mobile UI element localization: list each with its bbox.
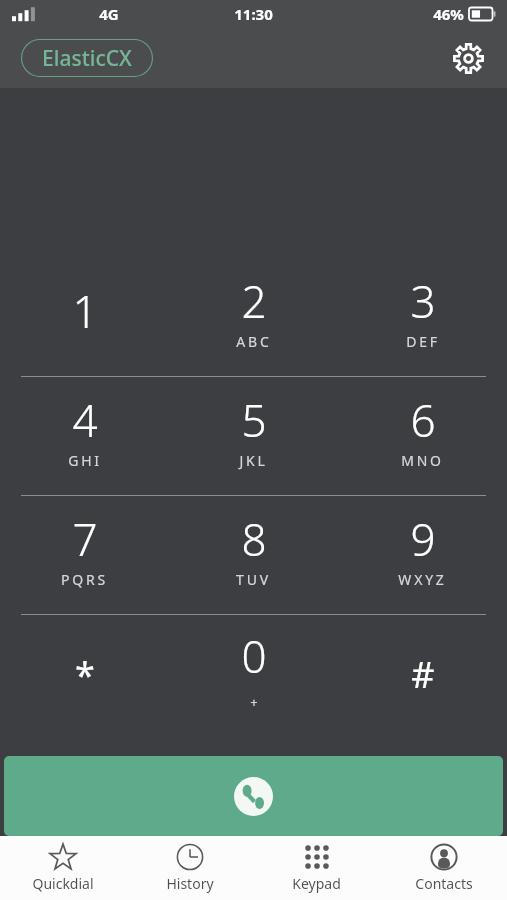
button[interactable]: Call	[4, 756, 503, 836]
staticText: #	[411, 650, 435, 699]
staticText: MNO	[401, 451, 444, 470]
button[interactable]: 9	[338, 496, 507, 614]
staticText: 6	[410, 390, 436, 450]
staticText: 11:30	[234, 4, 273, 24]
button[interactable]: *	[0, 615, 169, 733]
staticText: 4	[72, 390, 98, 450]
staticText: 8	[241, 509, 267, 569]
button[interactable]: 6	[338, 377, 507, 495]
button[interactable]: Settings	[448, 38, 488, 78]
staticText: Keypad	[292, 874, 341, 893]
staticText: GHI	[68, 451, 102, 470]
button[interactable]: Contacts	[380, 836, 507, 900]
button[interactable]: 7	[0, 496, 169, 614]
staticText: JKL	[239, 451, 268, 470]
staticText: +	[250, 693, 258, 711]
button[interactable]: 5	[169, 377, 338, 495]
staticText: Quickdial	[32, 874, 94, 893]
staticText: ElasticCX	[42, 44, 132, 73]
staticText: 3	[410, 271, 436, 331]
button[interactable]: 2	[169, 258, 338, 376]
staticText: 0	[241, 626, 267, 686]
button[interactable]: 8	[169, 496, 338, 614]
button[interactable]: #	[338, 615, 507, 733]
staticText: DEF	[406, 332, 440, 351]
button[interactable]: 3	[338, 258, 507, 376]
staticText: 7	[72, 509, 98, 569]
staticText: 1	[72, 281, 98, 341]
staticText: 2	[241, 271, 267, 331]
button[interactable]: ElasticCX	[21, 39, 153, 77]
button[interactable]: 4	[0, 377, 169, 495]
staticText: *	[75, 650, 95, 699]
staticText: ABC	[236, 332, 272, 351]
button[interactable]: 0	[169, 615, 338, 733]
button[interactable]: History	[126, 836, 253, 900]
staticText: Contacts	[415, 874, 473, 893]
button[interactable]: Keypad	[253, 836, 380, 900]
staticText: History	[166, 874, 214, 893]
button[interactable]: 1	[0, 258, 169, 376]
staticText: 5	[241, 390, 267, 450]
staticText: PQRS	[61, 570, 108, 589]
button[interactable]: Quickdial	[0, 836, 126, 900]
staticText: 9	[410, 509, 436, 569]
staticText: 4G	[99, 4, 119, 24]
staticText: TUV	[236, 570, 271, 589]
staticText: WXYZ	[398, 570, 447, 589]
staticText: 46%	[433, 4, 464, 24]
